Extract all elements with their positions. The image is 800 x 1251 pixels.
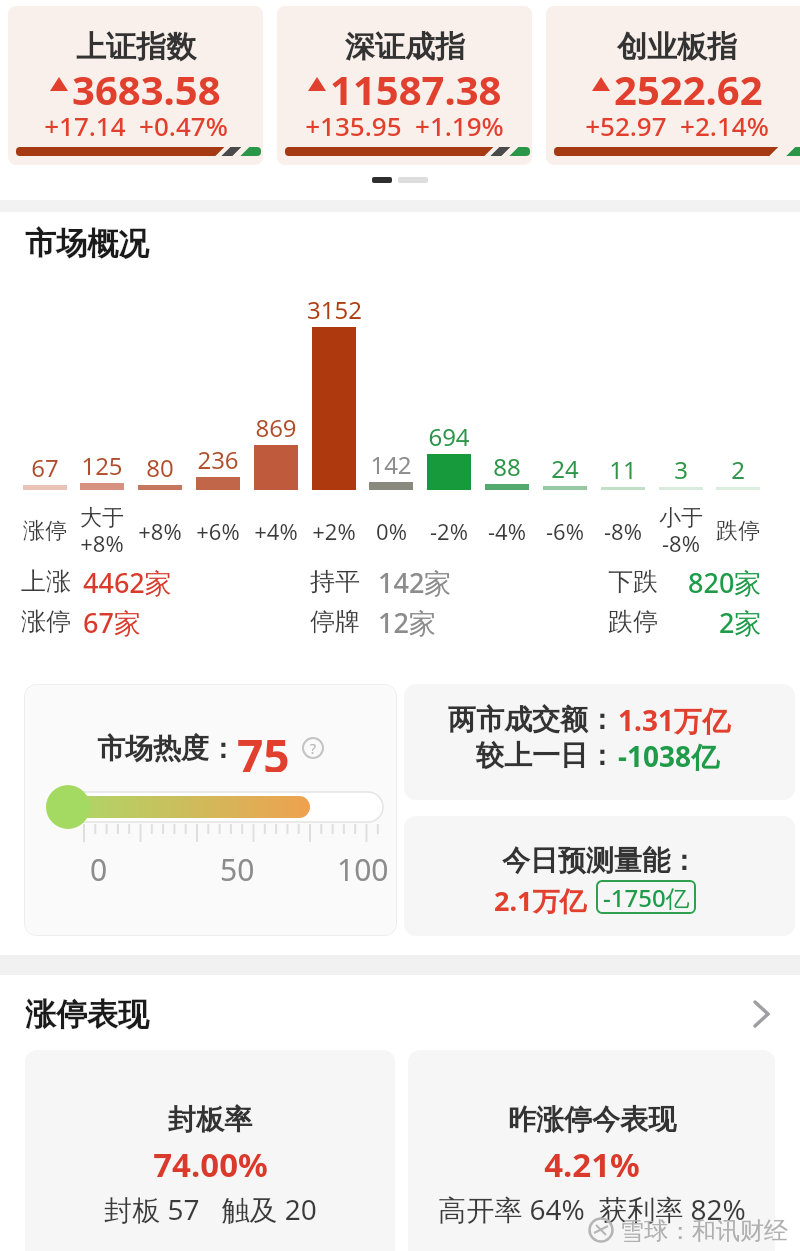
button[interactable]: 上证指数 [8, 6, 263, 165]
staticText: 100 [337, 849, 389, 890]
button[interactable]: 涨停表现 [0, 992, 800, 1036]
staticText: 3152 [307, 293, 362, 326]
staticText: 0% [376, 516, 407, 546]
staticText: 88 [493, 450, 521, 483]
staticText: 上涨 [21, 566, 71, 597]
staticText: 50 [220, 849, 255, 890]
staticText: 跌停 [608, 606, 658, 637]
staticText: 1.31万亿 [618, 701, 730, 739]
button[interactable]: 两市成交额： [404, 684, 795, 800]
staticText: 较上一日： [476, 738, 616, 773]
button[interactable]: 昨涨停今表现 [408, 1050, 775, 1251]
button[interactable]: 市场热度： [24, 684, 397, 936]
staticText: 持平 [310, 566, 360, 597]
staticText: -8% [604, 516, 642, 546]
staticText: 24 [551, 452, 579, 485]
staticText: 75 [237, 724, 290, 772]
staticText: 67家 [83, 604, 141, 641]
staticText: 11587.38 [330, 62, 502, 106]
staticText: 67 [31, 451, 59, 484]
staticText: -6% [546, 516, 584, 546]
staticText: 小于 -8% [659, 504, 703, 559]
staticText: 236 [197, 443, 239, 476]
staticText: 涨停 [21, 606, 71, 637]
staticText: 3683.58 [72, 62, 221, 106]
staticText: 下跌 [608, 566, 658, 597]
staticText: 820家 [688, 564, 762, 601]
staticText: 869 [255, 411, 297, 444]
staticText: 2.1万亿 [494, 882, 587, 919]
staticText: 今日预测量能： [502, 843, 698, 878]
staticText: 142家 [378, 564, 452, 601]
staticText: 80 [146, 451, 174, 484]
staticText: 大于 +8% [80, 504, 124, 559]
staticText: +17.14 +0.47% [44, 108, 228, 143]
staticText: -1038亿 [618, 737, 720, 775]
staticText: 4.21% [544, 1142, 640, 1187]
staticText: -1750亿 [603, 881, 690, 914]
staticText: +8% [138, 516, 182, 546]
button[interactable]: 今日预测量能： [404, 816, 795, 936]
staticText: +4% [254, 516, 298, 546]
staticText: 2 [731, 453, 745, 486]
staticText: 跌停 [716, 517, 760, 545]
staticText: ? [310, 739, 317, 758]
staticText: 0 [90, 849, 108, 890]
staticText: 停牌 [310, 606, 360, 637]
staticText: 125 [81, 449, 123, 482]
staticText: -2% [430, 516, 468, 546]
staticText: 4462家 [83, 564, 172, 601]
staticText: -4% [488, 516, 526, 546]
staticText: 11 [609, 453, 637, 486]
staticText: 创业板指 [617, 28, 737, 66]
staticText: +2% [312, 516, 356, 546]
staticText: 74.00% [153, 1142, 268, 1187]
staticText: 高开率 64% 获利率 82% [438, 1190, 746, 1228]
staticText: 涨停表现 [25, 995, 149, 1034]
staticText: 12家 [378, 604, 436, 641]
staticText: +6% [196, 516, 240, 546]
staticText: 涨停 [23, 517, 67, 545]
staticText: +52.97 +2.14% [585, 108, 769, 143]
staticText: 市场概况 [25, 224, 149, 263]
staticText: 694 [428, 420, 470, 453]
staticText: 2522.62 [614, 62, 763, 106]
staticText: 142 [370, 448, 412, 481]
staticText: 封板率 [168, 1102, 252, 1137]
staticText: 2家 [719, 604, 762, 641]
button[interactable]: 封板率 [25, 1050, 395, 1251]
staticText: 3 [674, 453, 688, 486]
staticText: 封板 57 触及 20 [104, 1190, 317, 1228]
staticText: 昨涨停今表现 [508, 1102, 676, 1137]
staticText: +135.95 +1.19% [305, 108, 504, 143]
button[interactable]: 创业板指 [546, 6, 800, 165]
staticText: 市场热度： [97, 731, 237, 766]
staticText: 雪球：和讯财经 [620, 1216, 788, 1246]
button[interactable]: 深证成指 [277, 6, 532, 165]
staticText: 上证指数 [76, 28, 196, 66]
staticText: 两市成交额： [448, 702, 616, 737]
staticText: 深证成指 [345, 28, 465, 66]
